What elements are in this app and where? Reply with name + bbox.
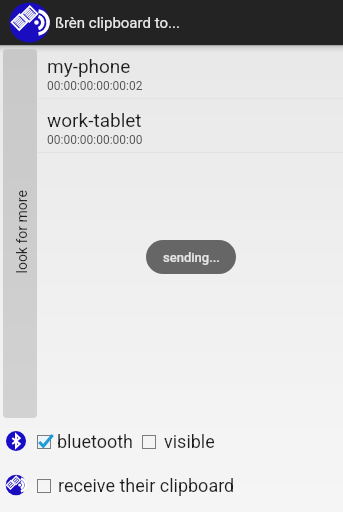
button[interactable]: Clipboard sharing [5, 474, 27, 496]
other: App icon [9, 2, 50, 43]
staticText: work-tablet [47, 109, 142, 131]
staticText: 00:00:00:00:00:00 [47, 133, 143, 147]
staticText: ßrèn clipboard to... [55, 14, 180, 32]
button[interactable]: Bluetooth [5, 430, 27, 452]
staticText: visible [164, 431, 215, 452]
button[interactable]: my-phone [38, 45, 343, 99]
button[interactable]: receive their clipboard [37, 475, 235, 496]
button[interactable] [3, 49, 37, 418]
button[interactable]: App icon [0, 0, 343, 45]
staticText: bluetooth [57, 431, 133, 452]
staticText: my-phone [47, 55, 131, 77]
button[interactable]: work-tablet [38, 99, 343, 153]
button[interactable]: bluetooth [37, 431, 133, 452]
button[interactable]: visible [142, 431, 215, 452]
staticText: sending... [163, 250, 220, 265]
staticText: 00:00:00:00:00:02 [47, 79, 143, 93]
staticText: receive their clipboard [58, 475, 235, 496]
